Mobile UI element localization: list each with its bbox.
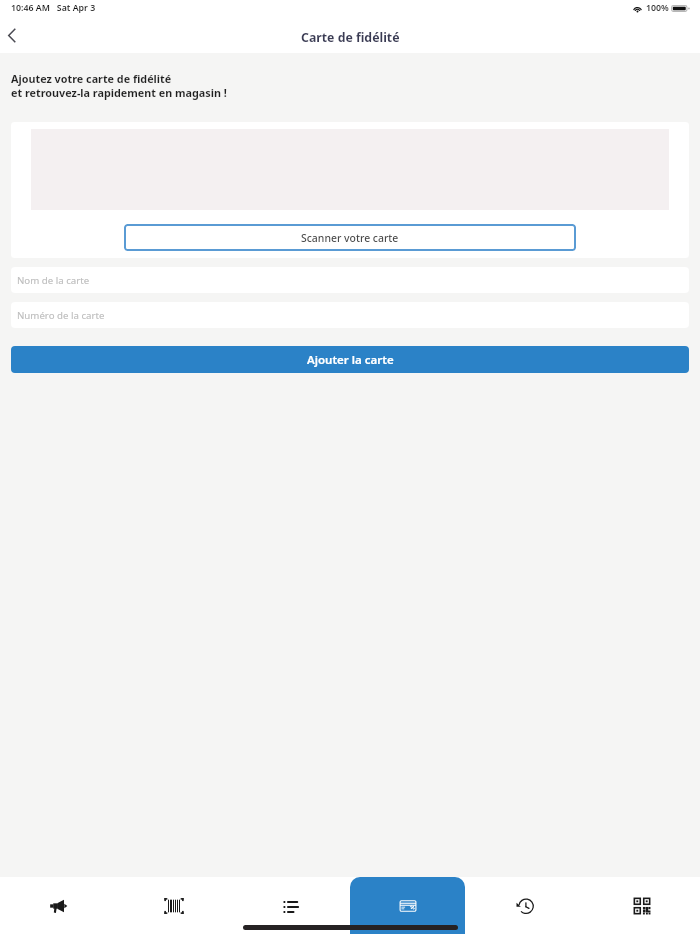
staticText: 10:46 AM Sat Apr 3 bbox=[11, 2, 96, 14]
button[interactable]: Loyalty card bbox=[349, 877, 466, 934]
button[interactable]: Back bbox=[0, 18, 24, 53]
staticText: Nom de la carte bbox=[17, 274, 90, 287]
staticText: Scanner votre carte bbox=[301, 231, 399, 245]
button[interactable]: Ajouter la carte bbox=[11, 346, 689, 373]
button[interactable]: Scan bbox=[116, 877, 232, 934]
button[interactable]: QR code bbox=[583, 877, 700, 934]
button[interactable]: Nom de la carte bbox=[11, 267, 689, 293]
staticText: Numéro de la carte bbox=[17, 309, 105, 322]
button[interactable]: History bbox=[466, 877, 583, 934]
button[interactable]: Offers bbox=[0, 877, 116, 934]
staticText: Ajoutez votre carte de fidélité et retro… bbox=[11, 71, 227, 101]
button[interactable]: Scanner votre carte bbox=[124, 224, 576, 251]
staticText: Ajouter la carte bbox=[307, 352, 394, 368]
staticText: Carte de fidélité bbox=[301, 29, 400, 46]
button[interactable]: List bbox=[232, 877, 349, 934]
button[interactable]: Numéro de la carte bbox=[11, 302, 689, 328]
staticText: 100% bbox=[646, 2, 669, 14]
